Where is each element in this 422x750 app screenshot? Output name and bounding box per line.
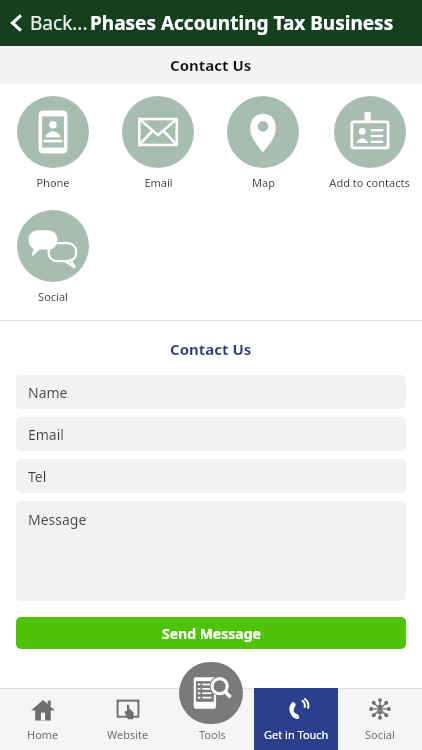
button[interactable]: Add to contacts — [327, 94, 412, 192]
staticText: Map — [252, 175, 275, 190]
staticText: Contact Us — [170, 339, 252, 359]
staticText: Social — [38, 289, 68, 304]
button[interactable]: Email — [16, 417, 406, 451]
button[interactable]: Tel — [16, 459, 406, 493]
button[interactable]: Tools — [179, 662, 243, 724]
staticText: Tools — [199, 727, 226, 742]
staticText: Back... — [30, 10, 88, 36]
button[interactable]: Social — [15, 208, 91, 306]
button[interactable]: Back... — [0, 4, 90, 42]
button[interactable]: Get in Touch — [254, 688, 338, 750]
staticText: Get in Touch — [264, 727, 329, 742]
button[interactable]: Website — [85, 688, 170, 750]
button[interactable]: Social — [338, 688, 422, 750]
button[interactable]: Tools — [170, 688, 254, 750]
staticText: Send Message — [162, 624, 261, 643]
staticText: Email — [28, 425, 64, 444]
staticText: Contact Us — [170, 55, 252, 75]
staticText: Phone — [36, 175, 70, 190]
staticText: Phases Accounting Tax Business — [90, 10, 394, 36]
staticText: Tel — [28, 467, 47, 486]
staticText: Email — [144, 175, 173, 190]
staticText: Add to contacts — [329, 175, 410, 190]
button[interactable]: Message — [16, 501, 406, 601]
staticText: Name — [28, 383, 68, 402]
staticText: Home — [27, 727, 59, 742]
button[interactable]: Email — [120, 94, 196, 192]
button[interactable]: Send Message — [16, 617, 406, 649]
button[interactable]: Home — [0, 688, 85, 750]
button[interactable]: Phone — [15, 94, 91, 192]
staticText: Website — [107, 727, 149, 742]
staticText: Message — [28, 510, 87, 529]
button[interactable]: Map — [225, 94, 301, 192]
button[interactable]: Name — [16, 375, 406, 409]
staticText: Social — [365, 727, 395, 742]
